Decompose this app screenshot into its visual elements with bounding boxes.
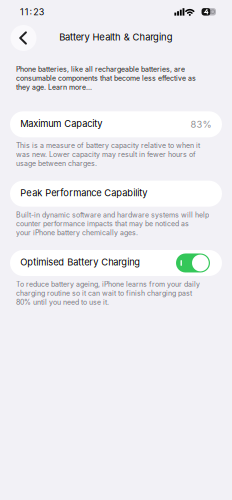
button[interactable]: Peak Performance Capability xyxy=(10,181,222,207)
staticText: Phone batteries, like all rechargeable b… xyxy=(16,65,196,91)
staticText: This is a measure of battery capacity re… xyxy=(16,141,200,168)
staticText: 11:23 xyxy=(20,6,48,17)
staticText: Built-in dynamic software and hardware s… xyxy=(16,211,209,237)
staticText: Optimised Battery Charging xyxy=(20,257,140,268)
staticText: To reduce battery ageing, iPhone learns … xyxy=(16,280,200,306)
button[interactable]: Learn more xyxy=(45,81,91,92)
button[interactable]: Optimised Battery Charging xyxy=(176,253,210,272)
staticText: 83% xyxy=(190,119,211,130)
button[interactable]: Maximum Capacity xyxy=(10,111,222,137)
staticText: Battery Health & Charging xyxy=(59,31,173,43)
staticText: Maximum Capacity xyxy=(20,118,102,129)
staticText: Peak Performance Capability xyxy=(20,187,147,198)
button[interactable]: Back xyxy=(10,25,36,51)
